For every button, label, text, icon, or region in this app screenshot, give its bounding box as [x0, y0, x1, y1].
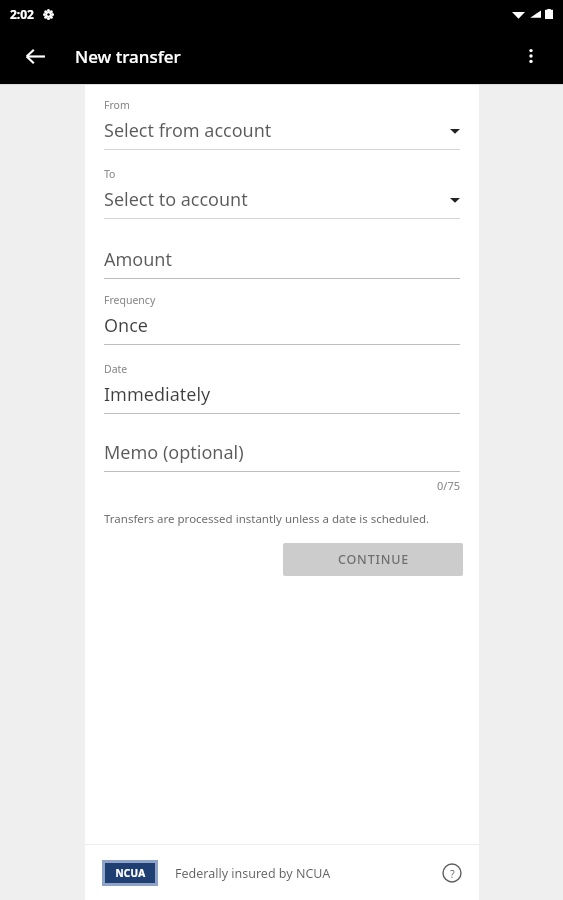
- staticText: Frequency: [104, 293, 156, 307]
- button[interactable]: Memo (optional): [85, 440, 479, 472]
- button[interactable]: CONTINUE: [283, 543, 463, 576]
- button[interactable]: Date: [85, 362, 479, 414]
- staticText: Once: [104, 313, 148, 338]
- staticText: 0/75: [85, 478, 460, 493]
- staticText: Select from account: [104, 118, 272, 143]
- staticText: Date: [104, 362, 128, 376]
- staticText: Amount: [104, 247, 172, 272]
- staticText: NCUA: [115, 866, 146, 880]
- staticText: Select to account: [104, 187, 248, 212]
- button[interactable]: From: [85, 98, 479, 150]
- staticText: Federally insured by NCUA: [175, 865, 331, 882]
- staticText: Immediately: [104, 382, 211, 407]
- staticText: 2:02: [10, 6, 34, 22]
- staticText: CONTINUE: [338, 551, 409, 568]
- staticText: Memo (optional): [104, 440, 244, 465]
- button[interactable]: Back: [13, 34, 57, 78]
- button[interactable]: More options: [509, 34, 553, 78]
- staticText: New transfer: [75, 45, 181, 68]
- staticText: From: [104, 98, 130, 112]
- staticText: To: [104, 167, 116, 181]
- button[interactable]: Help: [435, 856, 469, 890]
- button[interactable]: To: [85, 167, 479, 219]
- button[interactable]: Amount: [85, 247, 479, 279]
- staticText: ?: [450, 866, 455, 881]
- button[interactable]: Frequency: [85, 293, 479, 345]
- staticText: Transfers are processed instantly unless…: [104, 511, 430, 527]
